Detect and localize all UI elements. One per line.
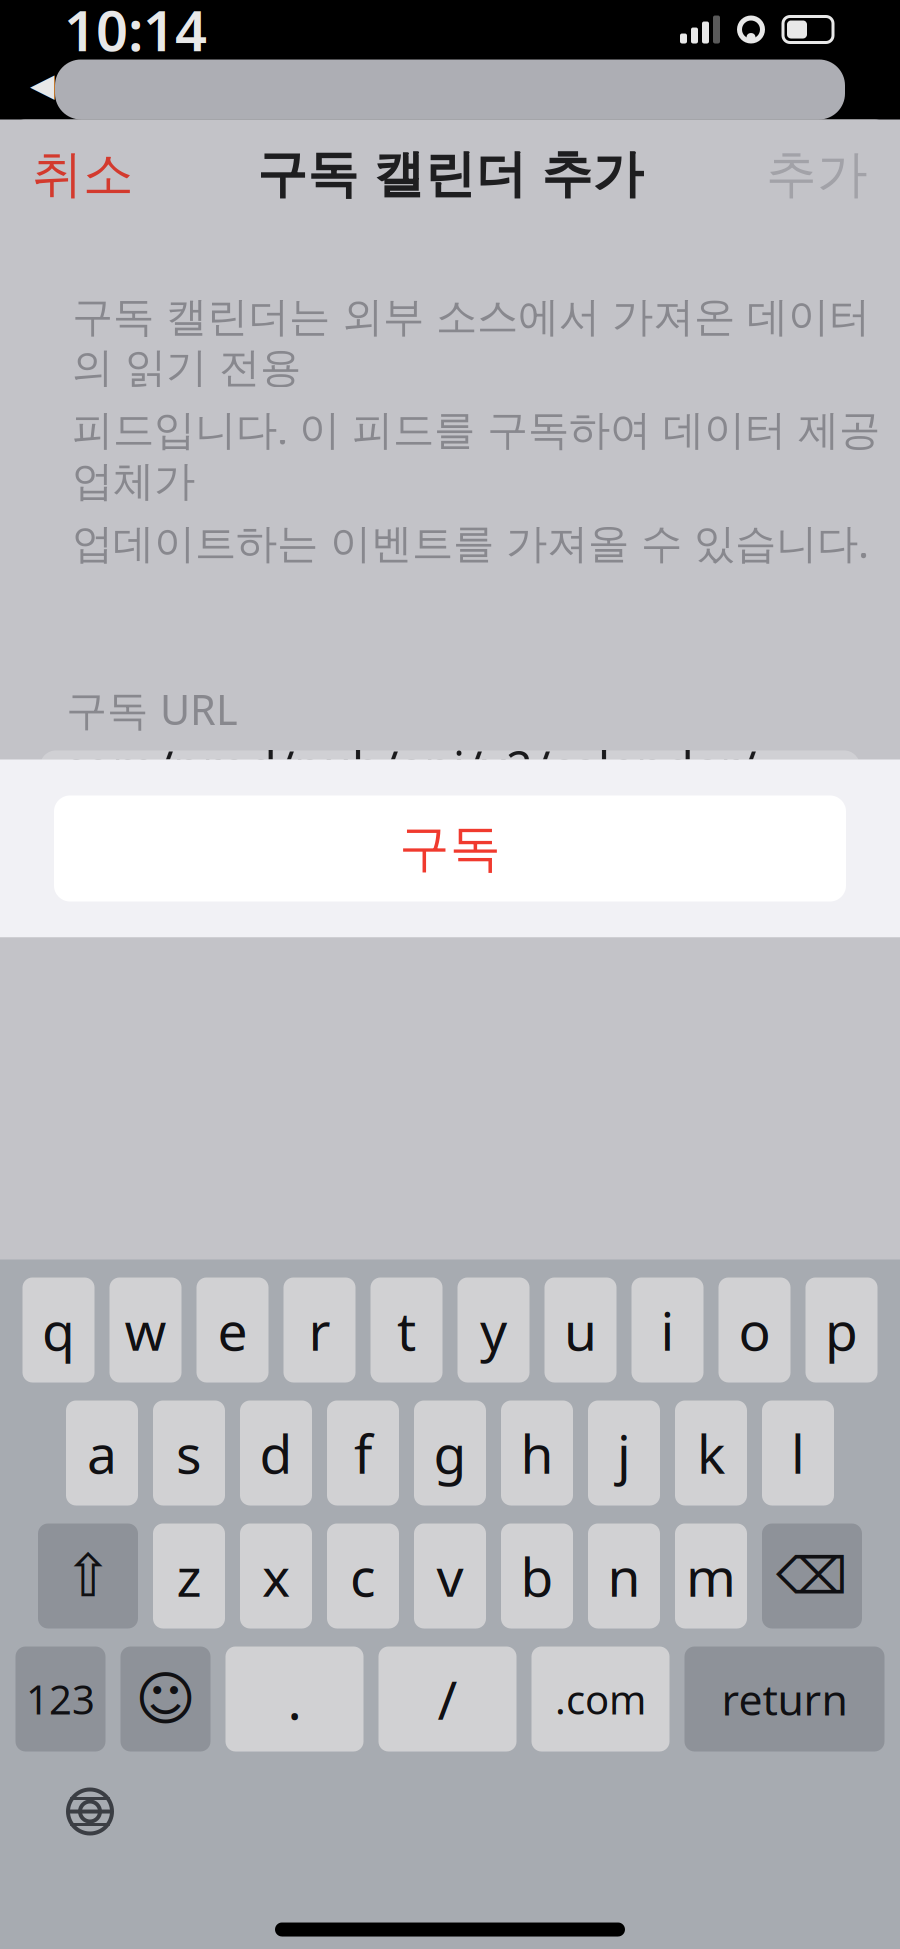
staticText: y: [480, 1295, 507, 1365]
button[interactable]: u: [544, 1277, 616, 1382]
staticText: com/prod/pub/api/v2/calendar/team/7804.i…: [62, 736, 756, 860]
staticText: u: [564, 1295, 597, 1365]
staticText: return: [721, 1671, 847, 1727]
button[interactable]: n: [588, 1523, 660, 1628]
button[interactable]: m: [675, 1523, 747, 1628]
staticText: 10:14: [64, 0, 207, 67]
staticText: FotMob: [61, 56, 215, 113]
staticText: z: [176, 1541, 201, 1611]
button[interactable]: k: [675, 1400, 747, 1505]
staticText: n: [607, 1541, 640, 1611]
button[interactable]: b: [501, 1523, 573, 1628]
staticText: r: [308, 1295, 330, 1365]
button[interactable]: h: [501, 1400, 573, 1505]
staticText: 피드입니다. 이 피드를 구독하여 데이터 제공업체가: [72, 401, 880, 507]
staticText: k: [697, 1418, 725, 1488]
button[interactable]: 취소: [32, 139, 152, 209]
staticText: q: [42, 1295, 75, 1365]
button[interactable]: e: [196, 1277, 268, 1382]
button[interactable]: q: [22, 1277, 94, 1382]
button[interactable]: /: [378, 1646, 516, 1751]
staticText: ⌫: [776, 1547, 848, 1605]
staticText: .: [287, 1664, 301, 1734]
button[interactable]: Delete: [762, 1523, 862, 1628]
button[interactable]: o: [718, 1277, 790, 1382]
button[interactable]: Clear text: [782, 770, 838, 826]
staticText: h: [520, 1418, 553, 1488]
staticText: i: [660, 1295, 674, 1365]
button[interactable]: .: [225, 1646, 363, 1751]
button[interactable]: Emoji: [120, 1646, 210, 1751]
button[interactable]: 구독: [54, 795, 846, 901]
button[interactable]: 추가: [748, 139, 868, 209]
staticText: l: [791, 1418, 805, 1488]
staticText: m: [686, 1541, 736, 1611]
staticText: j: [617, 1418, 631, 1488]
button[interactable]: a: [66, 1400, 138, 1505]
staticText: e: [217, 1295, 247, 1365]
button[interactable]: c: [327, 1523, 399, 1628]
button[interactable]: i: [631, 1277, 703, 1382]
button[interactable]: d: [240, 1400, 312, 1505]
staticText: t: [397, 1295, 416, 1365]
staticText: 구독 URL: [66, 682, 238, 736]
staticText: p: [825, 1295, 858, 1365]
staticText: .com: [555, 1672, 646, 1725]
staticText: 추가: [766, 143, 868, 206]
button[interactable]: s: [153, 1400, 225, 1505]
staticText: w: [124, 1295, 166, 1365]
button[interactable]: y: [457, 1277, 529, 1382]
button[interactable]: l: [762, 1400, 834, 1505]
button[interactable]: z: [153, 1523, 225, 1628]
staticText: a: [87, 1418, 117, 1488]
staticText: 취소: [32, 143, 134, 206]
button[interactable]: Shift: [38, 1523, 138, 1628]
staticText: x: [262, 1541, 290, 1611]
button[interactable]: j: [588, 1400, 660, 1505]
button[interactable]: return: [684, 1646, 884, 1751]
staticText: c: [350, 1541, 376, 1611]
button[interactable]: .com: [531, 1646, 669, 1751]
staticText: v: [436, 1541, 463, 1611]
staticText: g: [433, 1418, 466, 1488]
button[interactable]: Change keyboard: [50, 1771, 130, 1851]
staticText: 123: [26, 1672, 95, 1725]
staticText: 구독 캘린더 추가: [256, 143, 643, 206]
staticText: ✕: [797, 782, 822, 815]
staticText: o: [738, 1295, 770, 1365]
button[interactable]: 123: [15, 1646, 105, 1751]
button[interactable]: w: [109, 1277, 181, 1382]
staticText: /: [437, 1664, 457, 1734]
staticText: d: [259, 1418, 292, 1488]
button[interactable]: r: [283, 1277, 355, 1382]
button[interactable]: x: [240, 1523, 312, 1628]
staticText: ⇧: [63, 1543, 112, 1609]
staticText: b: [520, 1541, 553, 1611]
button[interactable]: p: [805, 1277, 877, 1382]
staticText: f: [354, 1418, 372, 1488]
staticText: ☺: [135, 1666, 196, 1732]
button[interactable]: t: [370, 1277, 442, 1382]
button[interactable]: g: [414, 1400, 486, 1505]
staticText: 구독 캘린더는 외부 소스에서 가져온 데이터의 읽기 전용: [72, 291, 870, 393]
staticText: s: [176, 1418, 202, 1488]
staticText: ◀: [30, 67, 55, 103]
button[interactable]: v: [414, 1523, 486, 1628]
button[interactable]: f: [327, 1400, 399, 1505]
staticText: 구독: [399, 817, 501, 880]
staticText: 업데이트하는 이벤트를 가져올 수 있습니다.: [72, 515, 869, 570]
